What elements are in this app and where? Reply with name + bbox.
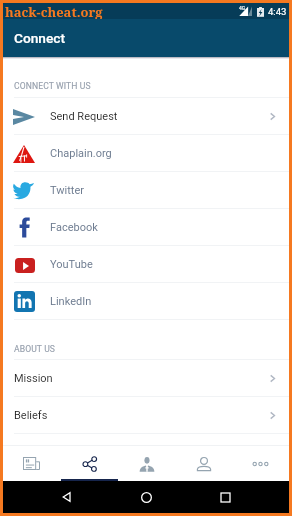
button[interactable]: Beliefs <box>3 397 289 433</box>
button[interactable]: Profile <box>175 446 232 481</box>
button[interactable]: LinkedIn <box>3 283 289 319</box>
staticText: YouTube <box>50 258 93 271</box>
staticText: ABOUT US <box>14 344 56 354</box>
button[interactable]: Send Request <box>3 98 289 134</box>
staticText: Chaplain.org <box>50 147 112 160</box>
staticText: Mission <box>14 372 53 385</box>
button[interactable]: Chaplains <box>118 446 175 481</box>
staticText: 4G <box>239 5 246 11</box>
button[interactable]: Share <box>61 446 118 481</box>
button[interactable]: YouTube <box>3 246 289 282</box>
staticText: LinkedIn <box>50 295 92 308</box>
button[interactable]: Home <box>131 482 161 512</box>
staticText: 4:43 <box>268 6 287 17</box>
button[interactable]: Back <box>52 482 82 512</box>
button[interactable]: More <box>232 446 289 481</box>
staticText: hack-cheat.org <box>5 3 103 19</box>
staticText: CONNECT WITH US <box>14 81 91 91</box>
staticText: Facebook <box>50 221 98 234</box>
button[interactable]: Recents <box>210 482 240 512</box>
button[interactable]: Facebook <box>3 209 289 245</box>
staticText: Connect <box>14 30 66 46</box>
staticText: Beliefs <box>14 409 48 422</box>
button[interactable]: Twitter <box>3 172 289 208</box>
staticText: Twitter <box>50 184 84 197</box>
button[interactable]: Chaplain.org <box>3 135 289 171</box>
button[interactable]: News <box>3 446 61 481</box>
staticText: Send Request <box>50 110 118 123</box>
button[interactable]: Mission <box>3 360 289 396</box>
